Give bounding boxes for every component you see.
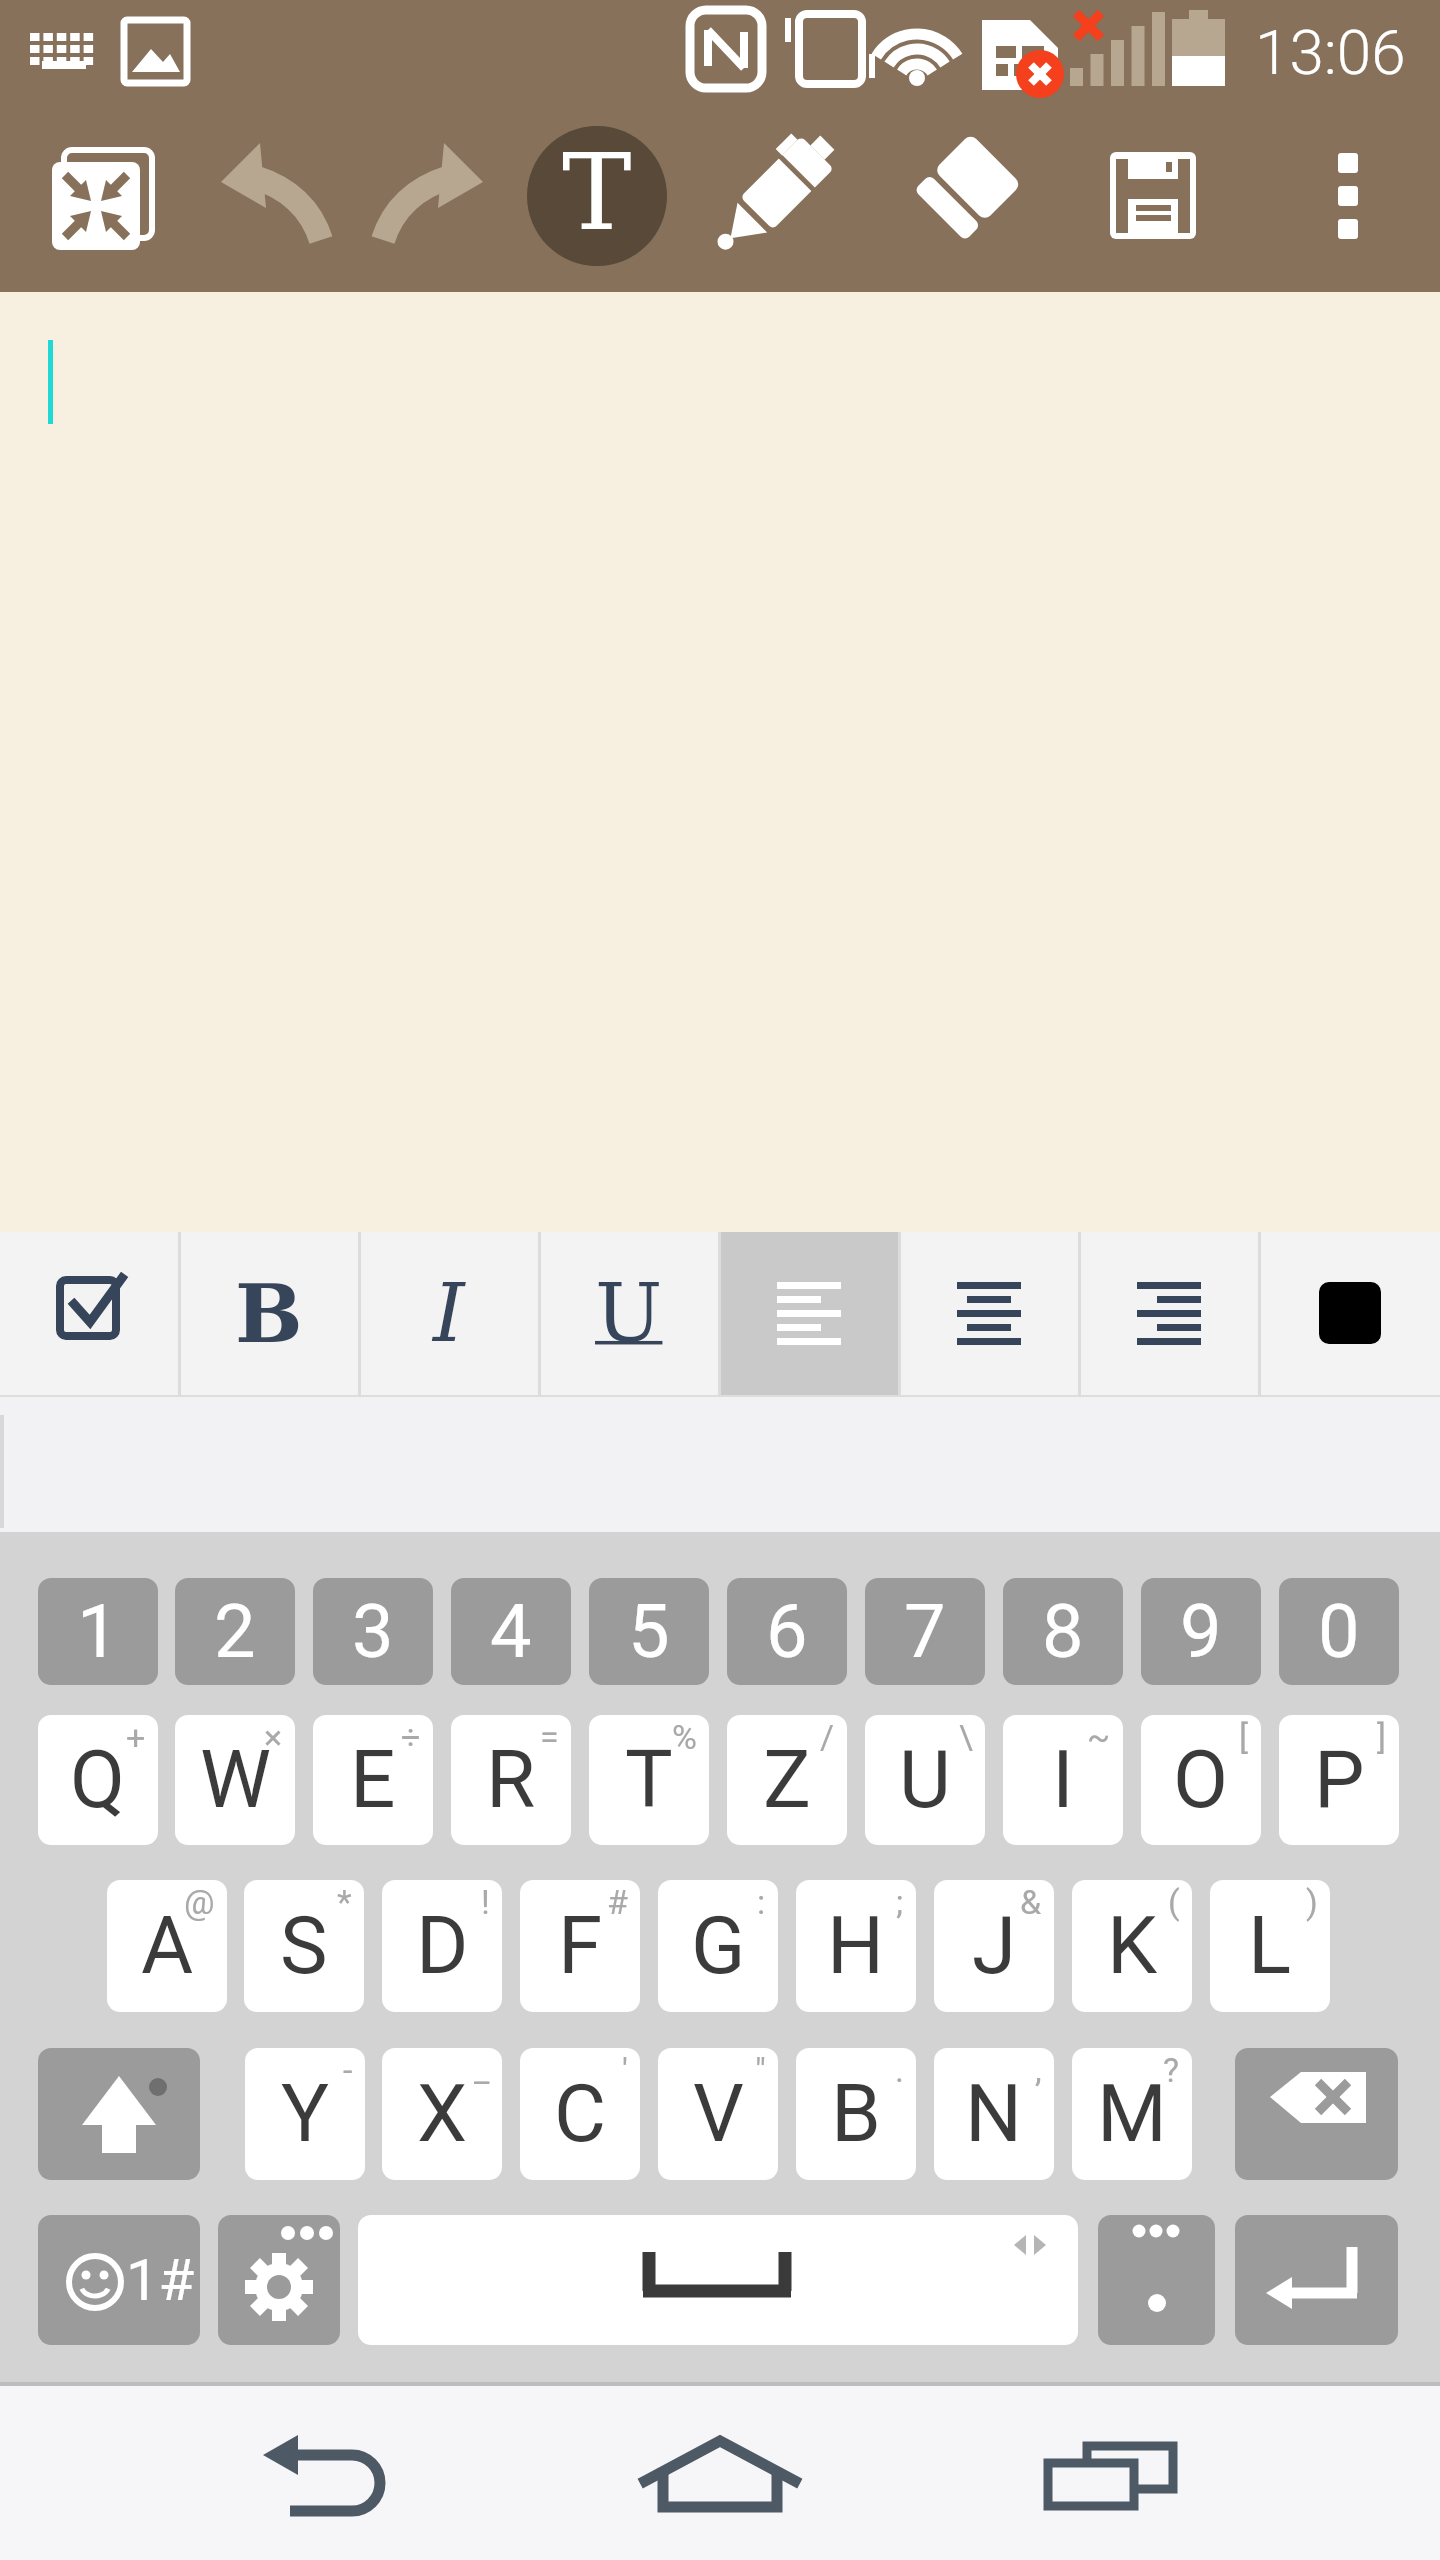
staticText: N — [965, 2067, 1023, 2161]
button[interactable] — [370, 135, 495, 260]
button[interactable]: X — [382, 2048, 502, 2180]
button[interactable]: I — [1003, 1715, 1123, 1845]
button[interactable] — [1315, 135, 1385, 260]
staticText: ? — [1163, 2050, 1180, 2090]
button[interactable] — [1235, 2215, 1398, 2345]
button[interactable]: L — [1210, 1880, 1330, 2012]
button[interactable]: K — [1072, 1880, 1192, 2012]
button[interactable]: B — [796, 2048, 916, 2180]
staticText: T — [625, 1733, 673, 1827]
staticText: X — [417, 2067, 468, 2161]
button[interactable]: 9 — [1141, 1578, 1261, 1685]
button[interactable] — [40, 140, 155, 255]
staticText: U — [595, 1267, 663, 1360]
button[interactable] — [210, 135, 335, 260]
button[interactable]: W — [175, 1715, 295, 1845]
staticText: Z — [763, 1733, 811, 1827]
button[interactable]: J — [934, 1880, 1054, 2012]
button[interactable]: 8 — [1003, 1578, 1123, 1685]
button[interactable]: O — [1141, 1715, 1261, 1845]
button[interactable]: 2 — [175, 1578, 295, 1685]
button[interactable]: N — [934, 2048, 1054, 2180]
button[interactable]: M — [1072, 2048, 1192, 2180]
staticText: U — [899, 1733, 951, 1827]
button[interactable]: T — [527, 126, 667, 266]
button[interactable]: P — [1279, 1715, 1399, 1845]
button[interactable]: V — [658, 2048, 778, 2180]
button[interactable]: R — [451, 1715, 571, 1845]
staticText: 0 — [1318, 1588, 1360, 1675]
button[interactable]: 0 — [1279, 1578, 1399, 1685]
button[interactable] — [1235, 2048, 1398, 2180]
button[interactable]: 3 — [313, 1578, 433, 1685]
staticText: O — [1173, 1733, 1229, 1827]
button[interactable]: Z — [727, 1715, 847, 1845]
button[interactable] — [1000, 2410, 1220, 2550]
button[interactable]: Y — [245, 2048, 365, 2180]
button[interactable]: D — [382, 1880, 502, 2012]
staticText: M — [1097, 2067, 1167, 2161]
button[interactable] — [1098, 2215, 1215, 2345]
button[interactable]: 1 — [38, 1578, 158, 1685]
staticText: Q — [70, 1733, 126, 1827]
button[interactable] — [710, 130, 840, 260]
staticText: ÷ — [401, 1717, 421, 1757]
button[interactable] — [1095, 135, 1215, 255]
button[interactable] — [358, 2215, 1078, 2345]
staticText: \ — [959, 1717, 973, 1757]
button[interactable]: U — [865, 1715, 985, 1845]
button[interactable] — [0, 292, 1440, 1232]
staticText: A — [141, 1899, 194, 1993]
button[interactable]: 4 — [451, 1578, 571, 1685]
staticText: * — [337, 1882, 352, 1922]
button[interactable]: 1# — [38, 2215, 200, 2345]
button[interactable] — [218, 2215, 340, 2345]
button[interactable] — [1080, 1232, 1258, 1395]
button[interactable] — [1260, 1232, 1440, 1395]
staticText: 9 — [1180, 1588, 1222, 1675]
button[interactable]: F — [520, 1880, 640, 2012]
button[interactable]: 6 — [727, 1578, 847, 1685]
staticText: B — [831, 2067, 881, 2161]
button[interactable]: G — [658, 1880, 778, 2012]
staticText: 6 — [766, 1588, 808, 1675]
staticText: C — [554, 2067, 607, 2161]
staticText: 7 — [904, 1588, 946, 1675]
staticText: # — [607, 1882, 628, 1922]
button[interactable]: 5 — [589, 1578, 709, 1685]
staticText: G — [691, 1899, 746, 1993]
staticText: . — [895, 2050, 904, 2090]
staticText: , — [1035, 2050, 1042, 2090]
button[interactable]: S — [244, 1880, 364, 2012]
button[interactable] — [38, 2048, 200, 2180]
staticText: R — [486, 1733, 536, 1827]
staticText: 1# — [126, 2246, 195, 2314]
button[interactable]: C — [520, 2048, 640, 2180]
button[interactable] — [900, 1232, 1078, 1395]
staticText: J — [972, 1899, 1017, 1993]
button[interactable] — [610, 2410, 830, 2550]
staticText: % — [672, 1717, 697, 1757]
button[interactable]: U — [540, 1232, 718, 1395]
button[interactable]: 7 — [865, 1578, 985, 1685]
button[interactable]: H — [796, 1880, 916, 2012]
staticText: 8 — [1042, 1588, 1084, 1675]
button[interactable]: E — [313, 1715, 433, 1845]
button[interactable] — [900, 130, 1030, 260]
staticText: I — [1052, 1733, 1074, 1827]
button[interactable]: I — [360, 1232, 538, 1395]
staticText: ' — [622, 2050, 628, 2090]
staticText: ( — [1168, 1882, 1180, 1922]
button[interactable] — [720, 1232, 898, 1395]
button[interactable] — [220, 2410, 440, 2550]
button[interactable]: T — [589, 1715, 709, 1845]
staticText: _ — [474, 2050, 490, 2090]
button[interactable]: Q — [38, 1715, 158, 1845]
staticText: ! — [481, 1882, 490, 1922]
staticText: 1 — [77, 1588, 119, 1675]
button[interactable]: B — [180, 1232, 358, 1395]
button[interactable]: A — [107, 1880, 227, 2012]
button[interactable] — [0, 1232, 178, 1395]
staticText: = — [540, 1717, 559, 1757]
staticText: " — [755, 2050, 766, 2090]
